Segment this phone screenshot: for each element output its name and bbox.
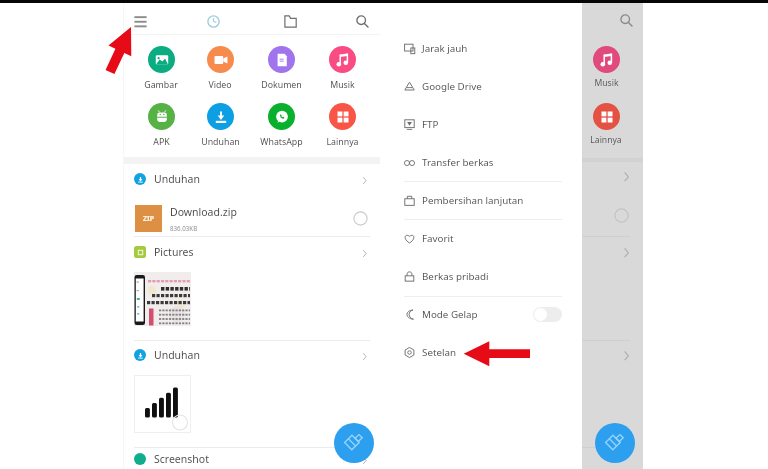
button[interactable]: Lainnya <box>314 103 370 148</box>
button[interactable]: Clean up <box>595 423 635 463</box>
button[interactable]: Berkas pribadi <box>380 257 582 295</box>
button[interactable]: Search <box>616 10 636 30</box>
button[interactable]: APK <box>133 103 189 148</box>
staticText: Pictures <box>154 245 194 259</box>
staticText: Berkas pribadi <box>422 270 489 283</box>
button[interactable]: Menu <box>123 6 157 36</box>
staticText: ZIP <box>143 214 155 224</box>
button[interactable]: Gambar <box>133 46 189 91</box>
button[interactable]: Search <box>345 6 379 36</box>
staticText: Musik <box>594 77 619 89</box>
staticText: APK <box>153 136 170 148</box>
staticText: Setelan <box>422 346 457 359</box>
staticText: Musik <box>330 79 355 91</box>
button[interactable]: Photo thumbnail <box>134 272 191 326</box>
staticText: Jarak jauh <box>422 42 468 55</box>
button[interactable]: Mode Gelap <box>380 295 582 333</box>
staticText: Mode Gelap <box>422 308 478 321</box>
button[interactable]: Unduhan <box>124 165 380 193</box>
button[interactable]: Setelan <box>380 333 582 371</box>
button[interactable]: Screenshot <box>124 445 380 469</box>
button[interactable]: Recent <box>196 6 230 36</box>
staticText: Download.zip <box>170 205 237 219</box>
button[interactable]: Video <box>192 46 248 91</box>
staticText: Pembersihan lanjutan <box>422 194 524 207</box>
staticText: Video <box>208 79 232 91</box>
staticText: WhatsApp <box>260 136 303 148</box>
staticText: Unduhan <box>154 348 200 362</box>
staticText: Transfer berkas <box>422 156 494 169</box>
button[interactable]: Musik <box>578 46 634 89</box>
button[interactable]: Dark mode toggle <box>533 307 562 322</box>
staticText: 836.03KB <box>170 224 198 232</box>
button[interactable]: Pictures <box>124 238 380 266</box>
button[interactable]: Signal thumbnail <box>134 375 191 433</box>
button[interactable]: Unduhan <box>124 341 380 369</box>
button[interactable]: Unduhan <box>192 103 248 148</box>
staticText: Favorit <box>422 232 454 245</box>
staticText: Lainnya <box>590 134 622 146</box>
staticText: FTP <box>422 118 439 131</box>
staticText: Dokumen <box>261 79 302 91</box>
button[interactable]: Pembersihan lanjutan <box>380 181 582 219</box>
button[interactable]: ZIP <box>124 198 380 238</box>
button[interactable]: Clean up <box>334 423 374 463</box>
staticText: Google Drive <box>422 80 482 93</box>
button[interactable]: WhatsApp <box>253 103 309 148</box>
button[interactable]: Folders <box>273 6 307 36</box>
button[interactable]: Dokumen <box>253 46 309 91</box>
button[interactable]: Musik <box>314 46 370 91</box>
staticText: Gambar <box>144 79 178 91</box>
staticText: Unduhan <box>154 172 200 186</box>
button[interactable]: Google Drive <box>380 67 582 105</box>
staticText: Screenshot <box>154 452 209 466</box>
button[interactable]: Lainnya <box>578 103 634 146</box>
button[interactable]: FTP <box>380 105 582 143</box>
staticText: Lainnya <box>326 136 359 148</box>
button[interactable]: Jarak jauh <box>380 29 582 67</box>
staticText: Unduhan <box>201 136 240 148</box>
button[interactable]: Transfer berkas <box>380 143 582 181</box>
button[interactable]: Favorit <box>380 219 582 257</box>
